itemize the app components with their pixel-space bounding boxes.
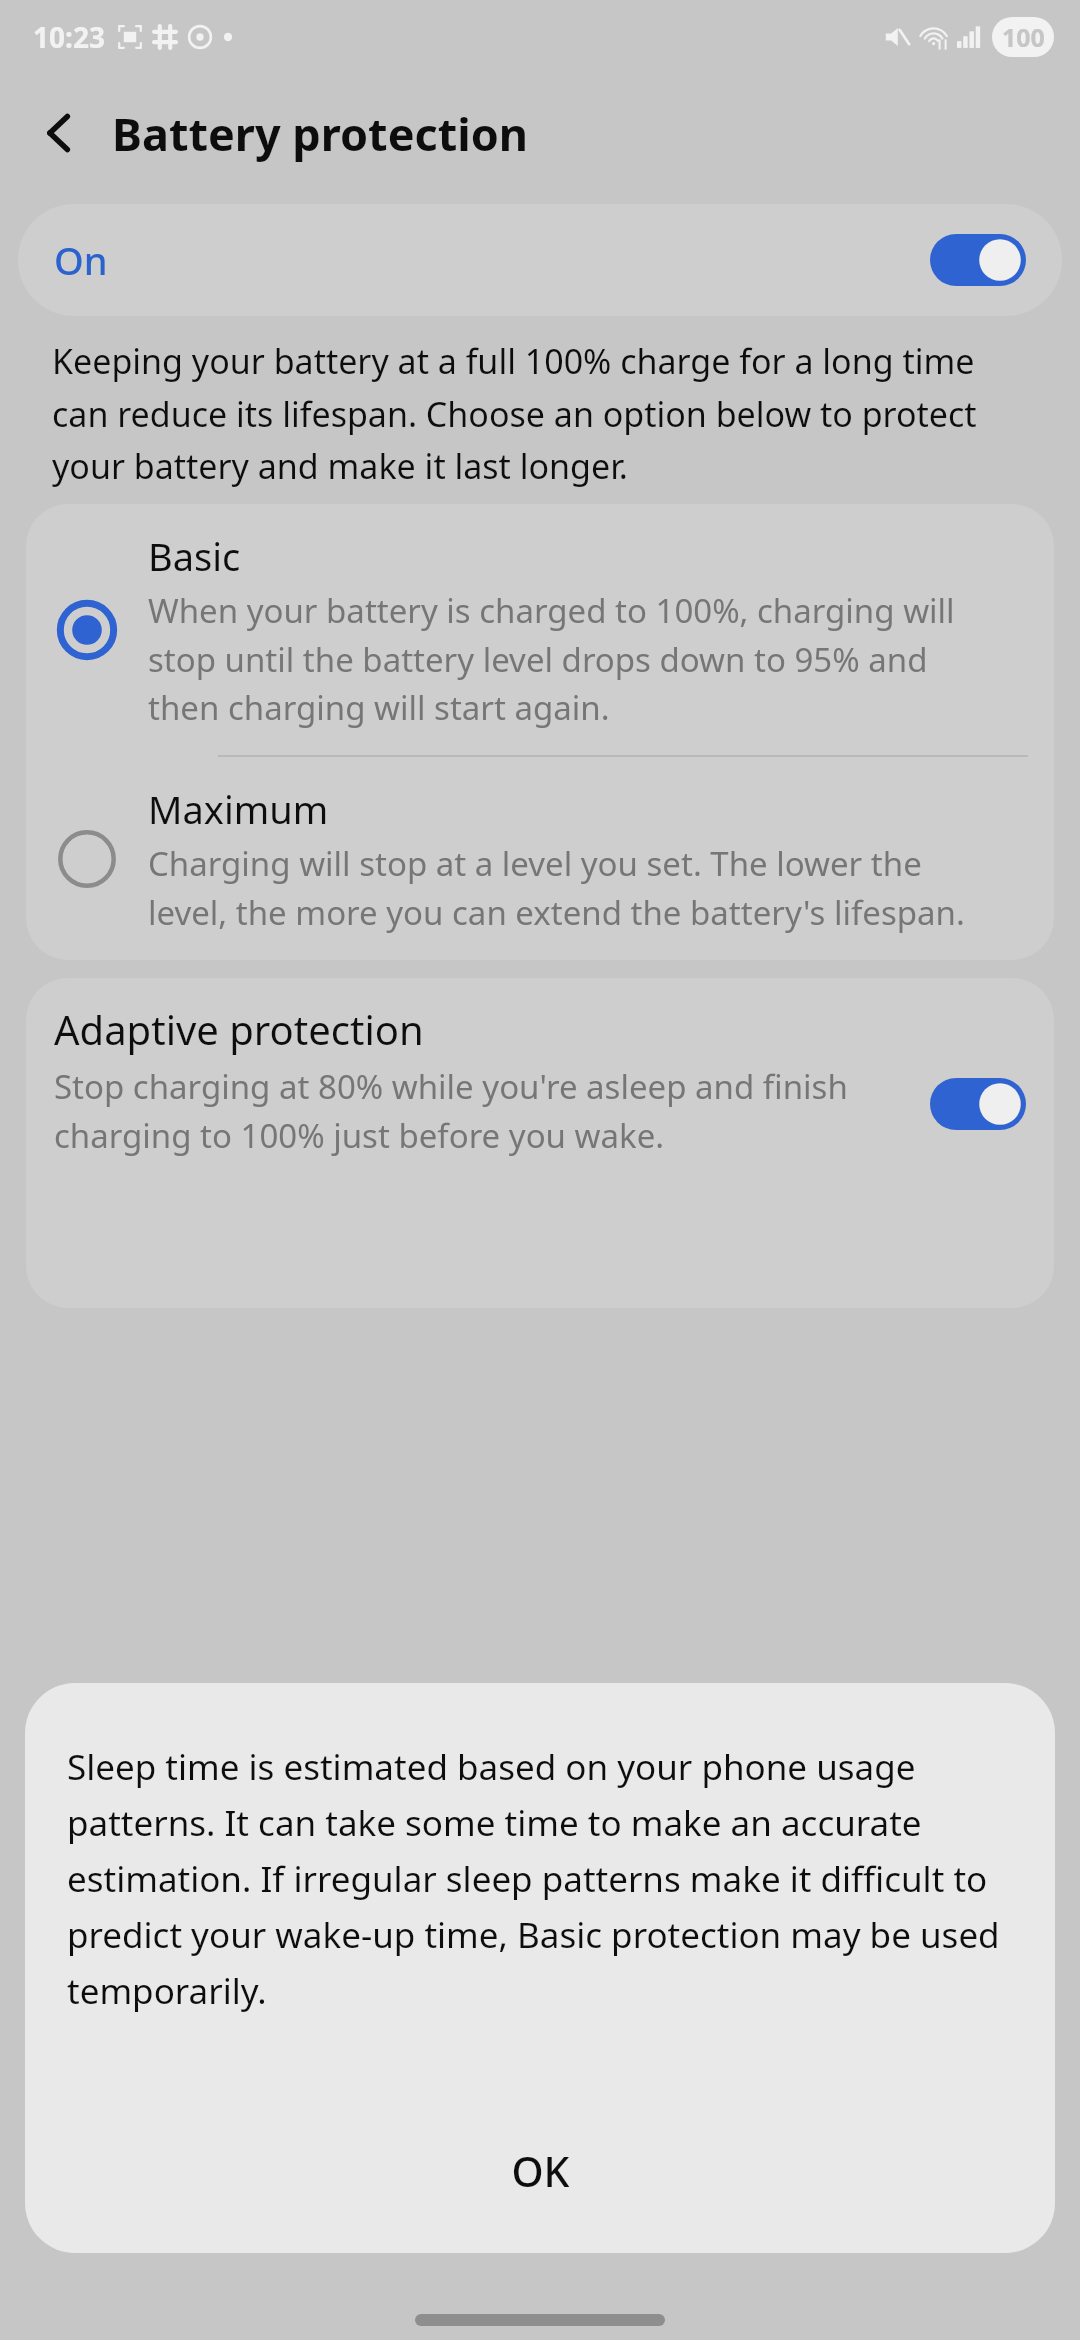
- staticText: Adaptive protection: [54, 1002, 424, 1056]
- staticText: Basic: [148, 530, 241, 582]
- button[interactable]: Maximum: [26, 757, 1054, 960]
- button[interactable]: OK: [25, 2125, 1055, 2253]
- staticText: Stop charging at 80% while you're asleep…: [54, 1064, 914, 1157]
- staticText: Charging will stop at a level you set. T…: [148, 841, 984, 934]
- button[interactable]: Basic: [26, 504, 1054, 755]
- button[interactable]: Back: [22, 95, 98, 171]
- staticText: OK: [511, 2143, 570, 2199]
- staticText: Keeping your battery at a full 100% char…: [52, 338, 1010, 489]
- staticText: On: [54, 234, 108, 286]
- button[interactable]: On: [18, 204, 1062, 316]
- staticText: When your battery is charged to 100%, ch…: [148, 588, 984, 729]
- button[interactable]: Adaptive protection: [26, 978, 1054, 1308]
- staticText: Sleep time is estimated based on your ph…: [67, 1743, 1013, 2014]
- staticText: 100: [1002, 20, 1045, 54]
- staticText: Battery protection: [112, 103, 529, 164]
- staticText: 10:23: [33, 18, 105, 56]
- staticText: Maximum: [148, 783, 329, 835]
